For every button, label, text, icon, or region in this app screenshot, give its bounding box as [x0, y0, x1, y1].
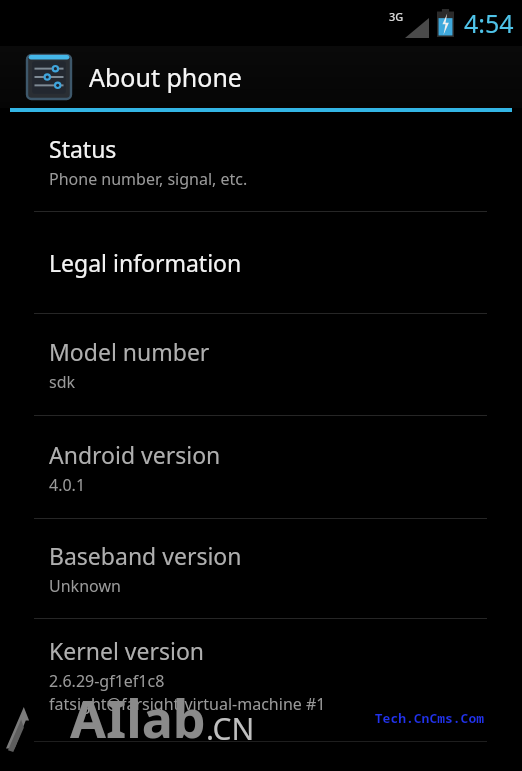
staticText: Phone number, signal, etc.	[49, 168, 248, 190]
staticText: 4:54	[464, 6, 514, 40]
staticText: .CN	[206, 708, 255, 749]
staticText: Unknown	[49, 575, 121, 597]
staticText: 2.6.29-gf1ef1c8	[49, 670, 165, 692]
staticText: 3G	[389, 9, 404, 24]
button[interactable]: About phone	[0, 46, 522, 108]
staticText: Tech.CnCms.Com	[374, 709, 484, 727]
staticText: Baseband version	[49, 540, 242, 571]
staticText: sdk	[49, 371, 76, 393]
staticText: Model number	[49, 336, 210, 367]
staticText: 4.0.1	[49, 474, 86, 496]
button[interactable]: Legal information	[0, 212, 522, 313]
staticText: Android version	[49, 439, 221, 470]
staticText: About phone	[89, 60, 242, 94]
button[interactable]: Status	[0, 112, 522, 211]
staticText: Legal information	[49, 247, 242, 278]
staticText: Kernel version	[49, 635, 205, 666]
staticText: Status	[49, 133, 117, 164]
staticText: AIlab	[70, 682, 206, 753]
staticText: fatsight@farsight-virtual-machine #1	[49, 693, 326, 715]
